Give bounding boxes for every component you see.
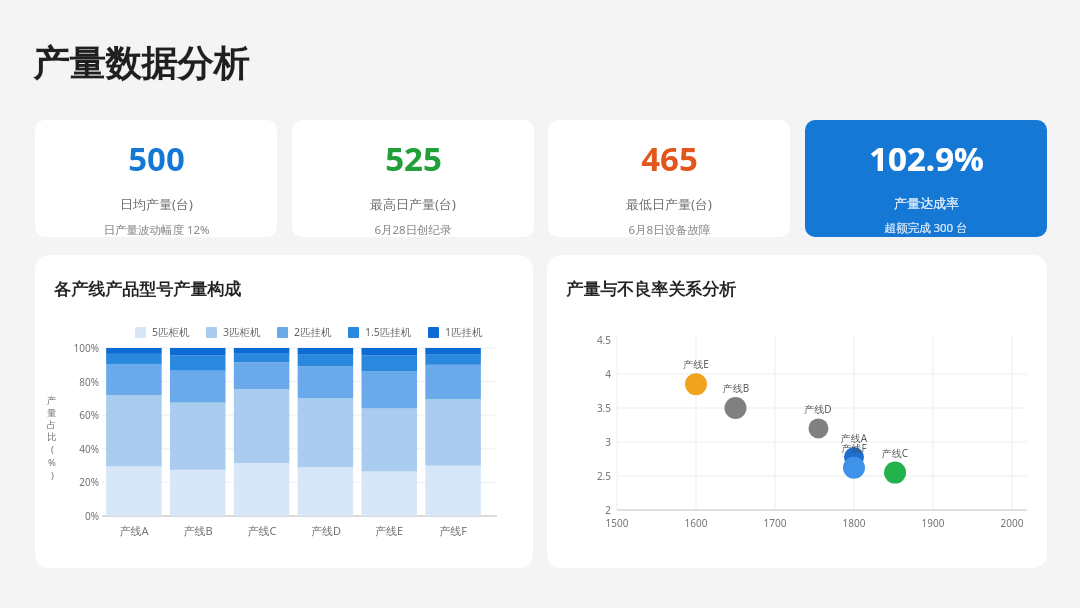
staticText: 1500 [597, 516, 637, 530]
staticText: 产线B [714, 381, 758, 395]
staticText: 产线B [166, 523, 230, 538]
staticText: 比 [47, 431, 57, 443]
staticText: 525 [385, 136, 442, 181]
staticText: 2000 [992, 516, 1032, 530]
staticText: 各产线产品型号产量构成 [54, 279, 241, 300]
staticText: 2匹挂机 [294, 325, 332, 339]
staticText: 1匹挂机 [445, 325, 483, 339]
button[interactable]: 465 [548, 120, 790, 237]
staticText: 超额完成 300 台 [884, 220, 968, 236]
staticText: 产线D [796, 402, 840, 416]
button[interactable]: 102.9% [805, 120, 1047, 237]
staticText: 20% [69, 475, 99, 489]
staticText: 1.5匹挂机 [365, 325, 412, 339]
staticText: 产 [47, 395, 57, 407]
staticText: 量 [47, 407, 57, 419]
staticText: 产量与不良率关系分析 [566, 279, 736, 300]
staticText: 产线F [421, 523, 485, 538]
staticText: 1600 [676, 516, 716, 530]
staticText: 最高日产量(台) [370, 195, 456, 213]
staticText: 4.5 [583, 333, 611, 347]
staticText: 产线A [102, 523, 166, 538]
staticText: 3.5 [583, 401, 611, 415]
button[interactable]: 产量与不良率关系分析 [547, 255, 1047, 568]
staticText: 2.5 [583, 469, 611, 483]
staticText: 产线E [674, 357, 718, 371]
staticText: 产线C [873, 446, 917, 460]
staticText: 产线E [357, 523, 421, 538]
staticText: 产线D [294, 523, 358, 538]
staticText: 6月28日创纪录 [374, 222, 452, 237]
staticText: % [48, 456, 56, 469]
button[interactable]: 各产线产品型号产量构成 [35, 255, 533, 568]
staticText: 产量达成率 [894, 195, 959, 211]
button[interactable]: 500 [35, 120, 277, 237]
staticText: ( [51, 443, 54, 456]
staticText: 40% [69, 442, 99, 456]
staticText: 5匹柜机 [152, 325, 190, 339]
staticText: 100% [69, 341, 99, 355]
staticText: 1700 [755, 516, 795, 530]
staticText: 日产量波动幅度 12% [103, 222, 210, 237]
staticText: 0% [69, 509, 99, 523]
staticText: 2 [583, 503, 611, 517]
staticText: 500 [128, 136, 185, 181]
staticText: 1900 [913, 516, 953, 530]
staticText: 60% [69, 408, 99, 422]
staticText: 3匹柜机 [223, 325, 261, 339]
staticText: 产线F [832, 441, 876, 455]
staticText: 占 [47, 419, 57, 431]
staticText: 80% [69, 375, 99, 389]
staticText: 最低日产量(台) [626, 195, 712, 213]
button[interactable]: 525 [292, 120, 534, 237]
staticText: 465 [641, 136, 698, 181]
staticText: 日均产量(台) [120, 195, 193, 213]
staticText: 102.9% [869, 136, 984, 181]
staticText: 3 [583, 435, 611, 449]
staticText: 4 [583, 367, 611, 381]
staticText: 产线C [230, 523, 294, 538]
staticText: 6月8日设备故障 [628, 222, 711, 237]
staticText: 1800 [834, 516, 874, 530]
staticText: ) [51, 469, 54, 482]
staticText: 产量数据分析 [33, 41, 249, 86]
staticText: 产线A [832, 431, 876, 445]
